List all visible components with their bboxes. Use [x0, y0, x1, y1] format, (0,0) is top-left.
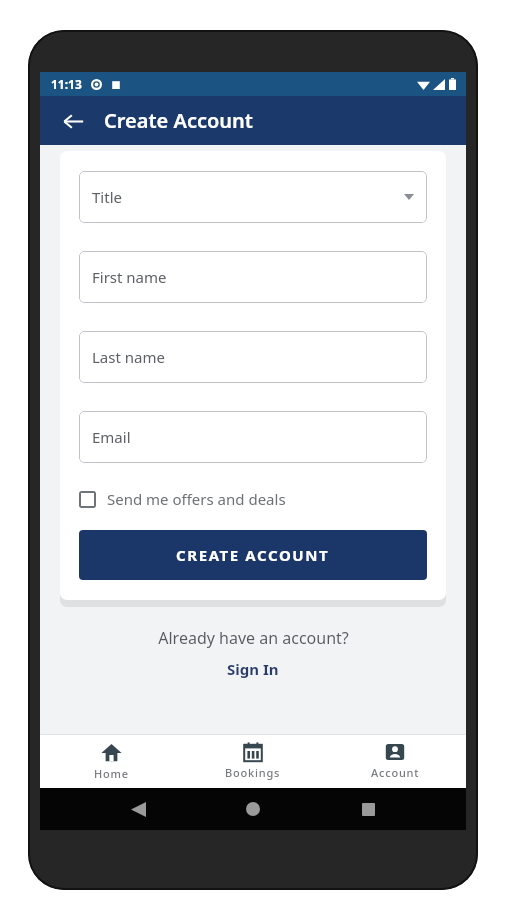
button[interactable]: CREATE ACCOUNT [79, 530, 427, 580]
staticText: Last name [92, 347, 165, 367]
button[interactable]: Bookings [182, 734, 324, 788]
staticText: Already have an account? [158, 627, 349, 649]
staticText: Account [371, 765, 420, 780]
button[interactable]: Title [79, 171, 427, 223]
button[interactable]: Home [40, 734, 182, 788]
button[interactable]: Last name [79, 331, 427, 383]
button[interactable]: Home [236, 792, 270, 826]
button[interactable]: Back [54, 102, 92, 140]
staticText: Create Account [104, 107, 253, 134]
staticText: Bookings [225, 765, 281, 780]
button[interactable]: First name [79, 251, 427, 303]
button[interactable]: Account [324, 734, 466, 788]
button[interactable]: Recent apps [351, 792, 385, 826]
staticText: Sign In [227, 659, 279, 679]
staticText: Email [92, 427, 131, 447]
button[interactable]: Email [79, 411, 427, 463]
staticText: CREATE ACCOUNT [176, 545, 330, 565]
staticText: 11:13 [51, 76, 82, 92]
staticText: Home [94, 766, 129, 781]
button[interactable]: Send me offers and deals [79, 485, 286, 513]
staticText: Title [92, 187, 122, 207]
staticText: First name [92, 267, 167, 287]
button[interactable]: Back [121, 792, 155, 826]
button[interactable]: Sign In [217, 656, 289, 682]
staticText: Send me offers and deals [107, 489, 286, 509]
